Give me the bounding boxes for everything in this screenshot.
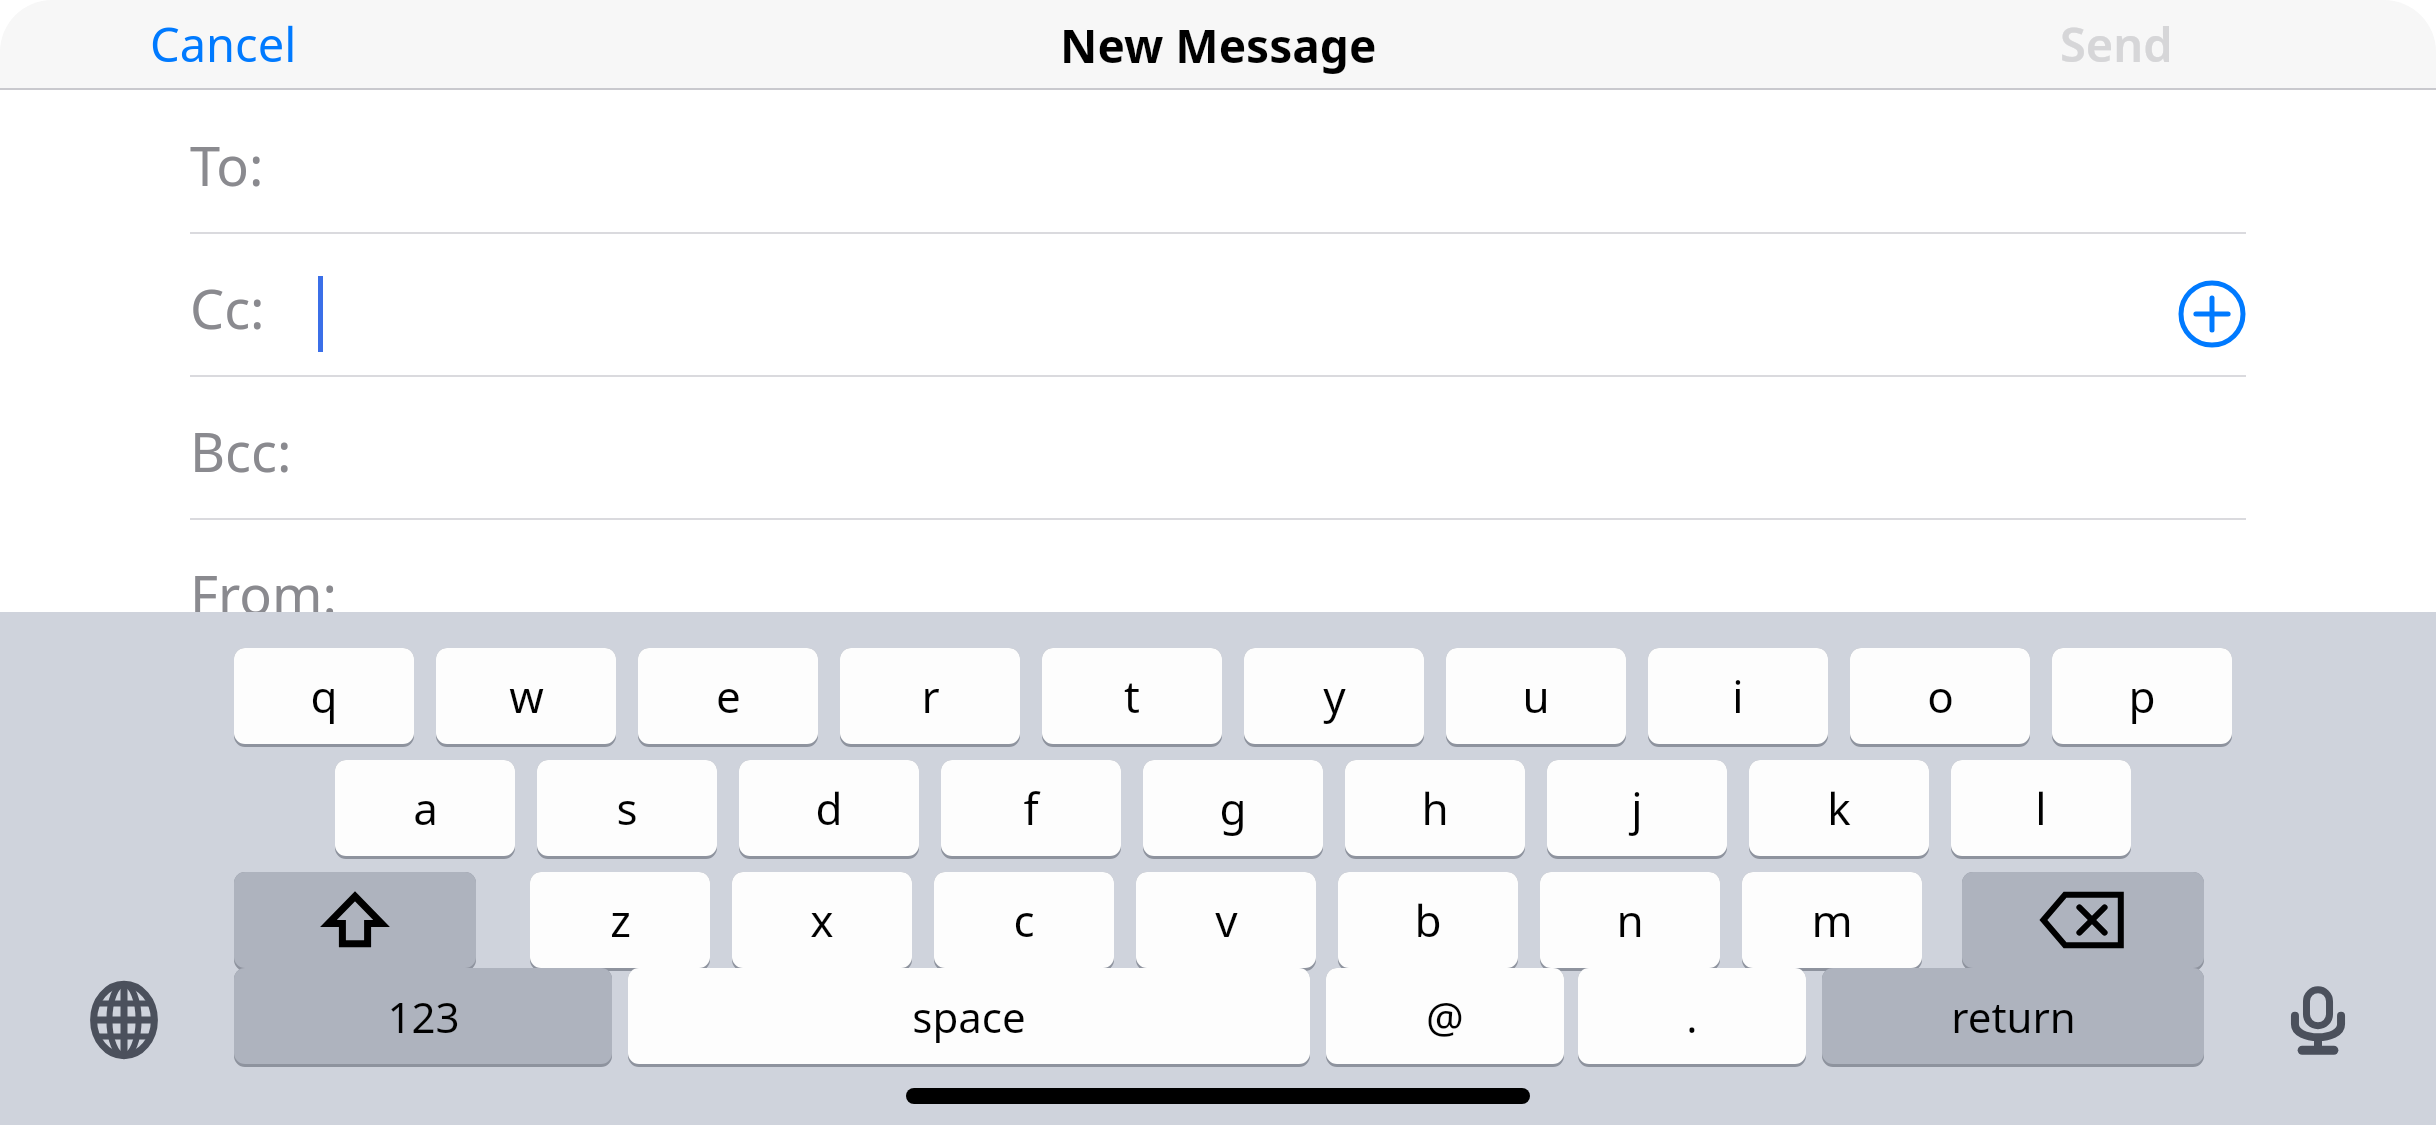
button[interactable]: @ [1326,968,1564,1064]
staticText: b [1414,890,1442,950]
staticText: Bcc: [190,414,292,488]
button[interactable]: Dictation [2266,968,2370,1072]
button[interactable]: r [840,648,1020,744]
staticText: s [616,778,638,838]
button[interactable]: To: [0,90,2436,233]
staticText: l [2035,778,2047,838]
staticText: y [1323,666,1346,726]
button[interactable]: 123 [234,968,612,1064]
staticText: h [1421,778,1449,838]
button[interactable]: p [2052,648,2232,744]
button[interactable]: Cc: [0,233,2436,376]
button[interactable]: Send [2060,8,2280,80]
button[interactable]: . [1578,968,1806,1064]
staticText: v [1215,890,1238,950]
button[interactable]: s [537,760,717,856]
button[interactable]: Backspace [1962,872,2204,968]
button[interactable]: v [1136,872,1316,968]
button[interactable]: a [335,760,515,856]
button[interactable]: q [234,648,414,744]
button[interactable]: z [530,872,710,968]
button[interactable]: m [1742,872,1922,968]
button[interactable]: n [1540,872,1720,968]
button[interactable]: From: [0,519,2436,662]
button[interactable]: Cancel [150,8,390,80]
staticText: Cc: [190,271,265,345]
staticText: o [1927,666,1954,726]
button[interactable]: g [1143,760,1323,856]
staticText: w [509,666,544,726]
button[interactable]: f [941,760,1121,856]
staticText: a [413,778,438,838]
staticText: j [1631,778,1643,838]
staticText: New Message [1060,14,1377,77]
button[interactable]: l [1951,760,2131,856]
button[interactable]: y [1244,648,1424,744]
staticText: e [716,666,741,726]
button[interactable]: t [1042,648,1222,744]
button[interactable]: space [628,968,1310,1064]
staticText: q [310,666,338,726]
staticText: 123 [387,988,460,1045]
staticText: u [1522,666,1550,726]
staticText: i [1732,666,1744,726]
button[interactable]: Add contact [2178,280,2246,348]
button[interactable]: j [1547,760,1727,856]
button[interactable]: x [732,872,912,968]
staticText: Cancel [150,12,297,76]
staticText: x [810,890,834,950]
staticText: g [1219,778,1247,838]
button[interactable]: i [1648,648,1828,744]
staticText: m [1811,890,1853,950]
staticText: k [1827,778,1851,838]
button[interactable]: u [1446,648,1626,744]
button[interactable]: Shift [234,872,476,968]
staticText: return [1951,988,2076,1045]
staticText: p [2128,666,2156,726]
staticText: From: [190,557,337,631]
staticText: @ [1426,988,1464,1045]
staticText: n [1616,890,1644,950]
staticText: t [1124,666,1140,726]
staticText: f [1023,778,1039,838]
staticText: d [815,778,843,838]
button[interactable]: k [1749,760,1929,856]
button[interactable]: o [1850,648,2030,744]
button[interactable]: Next keyboard [72,968,176,1072]
button[interactable]: return [1822,968,2204,1064]
staticText: . [1686,988,1698,1045]
staticText: space [912,988,1026,1045]
button[interactable]: b [1338,872,1518,968]
staticText: To: [190,128,264,202]
button[interactable]: h [1345,760,1525,856]
button[interactable]: w [436,648,616,744]
button[interactable]: c [934,872,1114,968]
staticText: r [921,666,940,726]
button[interactable]: d [739,760,919,856]
button[interactable]: Bcc: [0,376,2436,519]
staticText: c [1013,890,1035,950]
staticText: z [610,890,631,950]
staticText: Send [2060,12,2173,76]
button[interactable]: e [638,648,818,744]
